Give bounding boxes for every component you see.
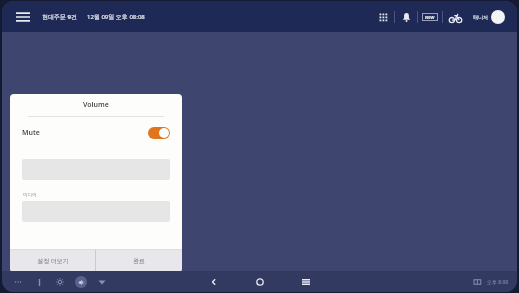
staticText: 설정 더보기 [37,257,69,265]
staticText: 12월 09일 오후 08:08 [87,13,145,21]
button[interactable]: Back [206,274,222,290]
button[interactable]: Keyboard [33,276,45,288]
button[interactable]: Wi-Fi [96,276,108,288]
staticText: 오후 8:08 [487,279,509,286]
button[interactable]: Delivery [443,5,467,29]
staticText: 매니저 [473,14,488,20]
button[interactable]: Menu [12,6,34,28]
button[interactable]: Recents [298,274,314,290]
button[interactable]: Mute [10,117,182,149]
staticText: 현대주문 9건 [42,13,77,21]
staticText: 미디어 [23,192,37,198]
button[interactable]: 설정 더보기 [10,250,95,272]
staticText: Mute [22,128,40,138]
button[interactable]: New [418,13,442,21]
button[interactable]: Volume [75,276,87,288]
staticText: Volume [83,100,109,110]
button[interactable]: 완료 [96,250,182,272]
button[interactable]: Home [252,274,268,290]
button[interactable]: Mute toggle [148,127,170,139]
button[interactable]: Apps [372,6,394,28]
staticText: 완료 [133,257,145,265]
staticText: NEW [425,15,435,20]
button[interactable]: Notifications [395,6,417,28]
button[interactable]: More [12,276,24,288]
button[interactable]: 매니저 [471,10,507,24]
button[interactable]: Brightness [54,276,66,288]
button[interactable]: Battery [472,276,484,288]
